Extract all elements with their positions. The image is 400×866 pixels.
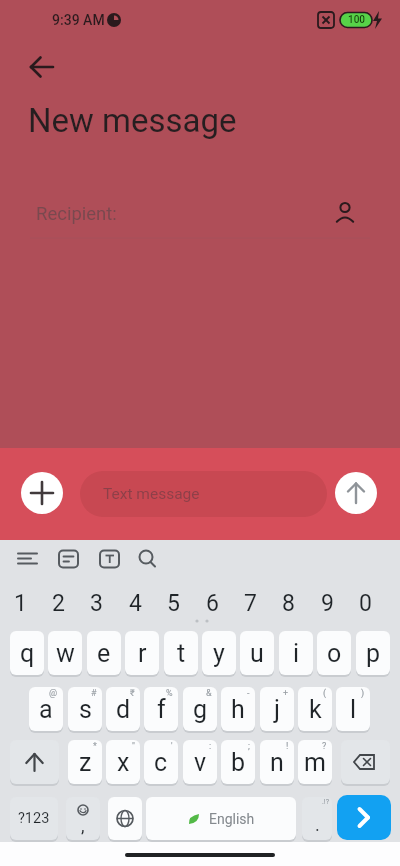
staticText: English [209,811,255,827]
staticText: + [283,688,289,699]
button[interactable]: l [336,687,370,731]
button[interactable] [330,198,362,230]
staticText: - [247,688,250,699]
staticText: c [154,748,168,777]
staticText: j [274,695,280,724]
button[interactable]: h [221,687,255,731]
staticText: l [350,695,357,724]
staticText: ! [286,741,289,752]
button[interactable] [10,740,59,784]
button[interactable] [341,740,390,784]
staticText: ?123 [18,810,50,827]
button[interactable]: Text message [80,471,327,517]
button[interactable]: u [240,631,274,675]
staticText: z [79,748,92,777]
staticText: ' [171,741,173,752]
button[interactable]: a [29,687,63,731]
staticText: e [97,639,111,668]
staticText: g [193,695,208,724]
button[interactable]: p [356,631,390,675]
button[interactable]: d [106,687,140,731]
button[interactable]: x [106,740,140,784]
button[interactable]: i [279,631,313,675]
staticText: k [309,695,322,724]
button[interactable]: , [66,797,100,840]
button[interactable]: v [183,740,217,784]
staticText: & [206,688,212,699]
button[interactable]: m [298,740,332,784]
staticText: i [293,639,300,668]
staticText: ? [322,741,327,752]
staticText: 6 [206,590,219,617]
staticText: 9:39 AM [52,12,105,28]
staticText: , [81,815,85,836]
button[interactable]: k [298,687,332,731]
button[interactable] [337,795,391,840]
staticText: .!? [322,798,329,806]
button[interactable]: b [221,740,255,784]
button[interactable]: y [202,631,236,675]
staticText: 2 [52,590,65,617]
staticText: n [270,748,284,777]
button[interactable]: w [48,631,82,675]
button[interactable]: 4 [117,585,154,621]
button[interactable]: c [144,740,178,784]
staticText: r [138,639,147,668]
button[interactable]: 1 [2,585,39,621]
button[interactable]: q [10,631,44,675]
staticText: 5 [167,590,180,617]
button[interactable]: e [87,631,121,675]
button[interactable]: 6 [194,585,231,621]
button[interactable]: f [144,687,178,731]
button[interactable]: 3 [78,585,115,621]
staticText: " [132,741,135,752]
button[interactable]: r [125,631,159,675]
staticText: x [117,748,130,777]
button[interactable]: . [302,797,332,840]
button[interactable] [335,472,377,514]
button[interactable]: z [68,740,102,784]
button[interactable]: g [183,687,217,731]
staticText: 8 [282,590,295,617]
staticText: . [315,814,320,835]
staticText: w [56,639,75,668]
button[interactable] [20,52,52,84]
staticText: 3 [90,590,103,617]
staticText: Recipient: [36,203,117,225]
staticText: f [157,695,166,724]
button[interactable]: 7 [232,585,269,621]
button[interactable]: 0 [347,585,384,621]
staticText: New message [28,101,237,140]
button[interactable]: j [260,687,294,731]
staticText: b [231,748,246,777]
staticText: a [39,695,53,724]
button[interactable] [108,797,142,840]
staticText: p [366,639,381,668]
button[interactable]: s [68,687,102,731]
staticText: # [91,688,97,699]
button[interactable]: t [164,631,198,675]
button[interactable]: 5 [155,585,192,621]
staticText: 4 [129,590,142,617]
staticText: * [93,741,97,752]
staticText: q [20,639,35,668]
button[interactable]: 8 [270,585,307,621]
staticText: 1 [14,590,27,617]
staticText: 9 [321,590,334,617]
staticText: ₹ [130,688,135,699]
staticText: 100 [348,14,366,26]
button[interactable] [21,472,63,514]
button[interactable]: English [146,797,296,840]
button[interactable]: o [317,631,351,675]
button[interactable]: 2 [40,585,77,621]
staticText: ( [323,688,327,699]
button[interactable]: ?123 [10,797,58,840]
staticText: y [213,639,225,668]
button[interactable]: n [260,740,294,784]
staticText: ) [361,688,365,699]
staticText: u [250,639,264,668]
staticText: 0 [359,590,372,617]
staticText: h [231,695,245,724]
staticText: : [209,741,212,752]
button[interactable]: 9 [309,585,346,621]
